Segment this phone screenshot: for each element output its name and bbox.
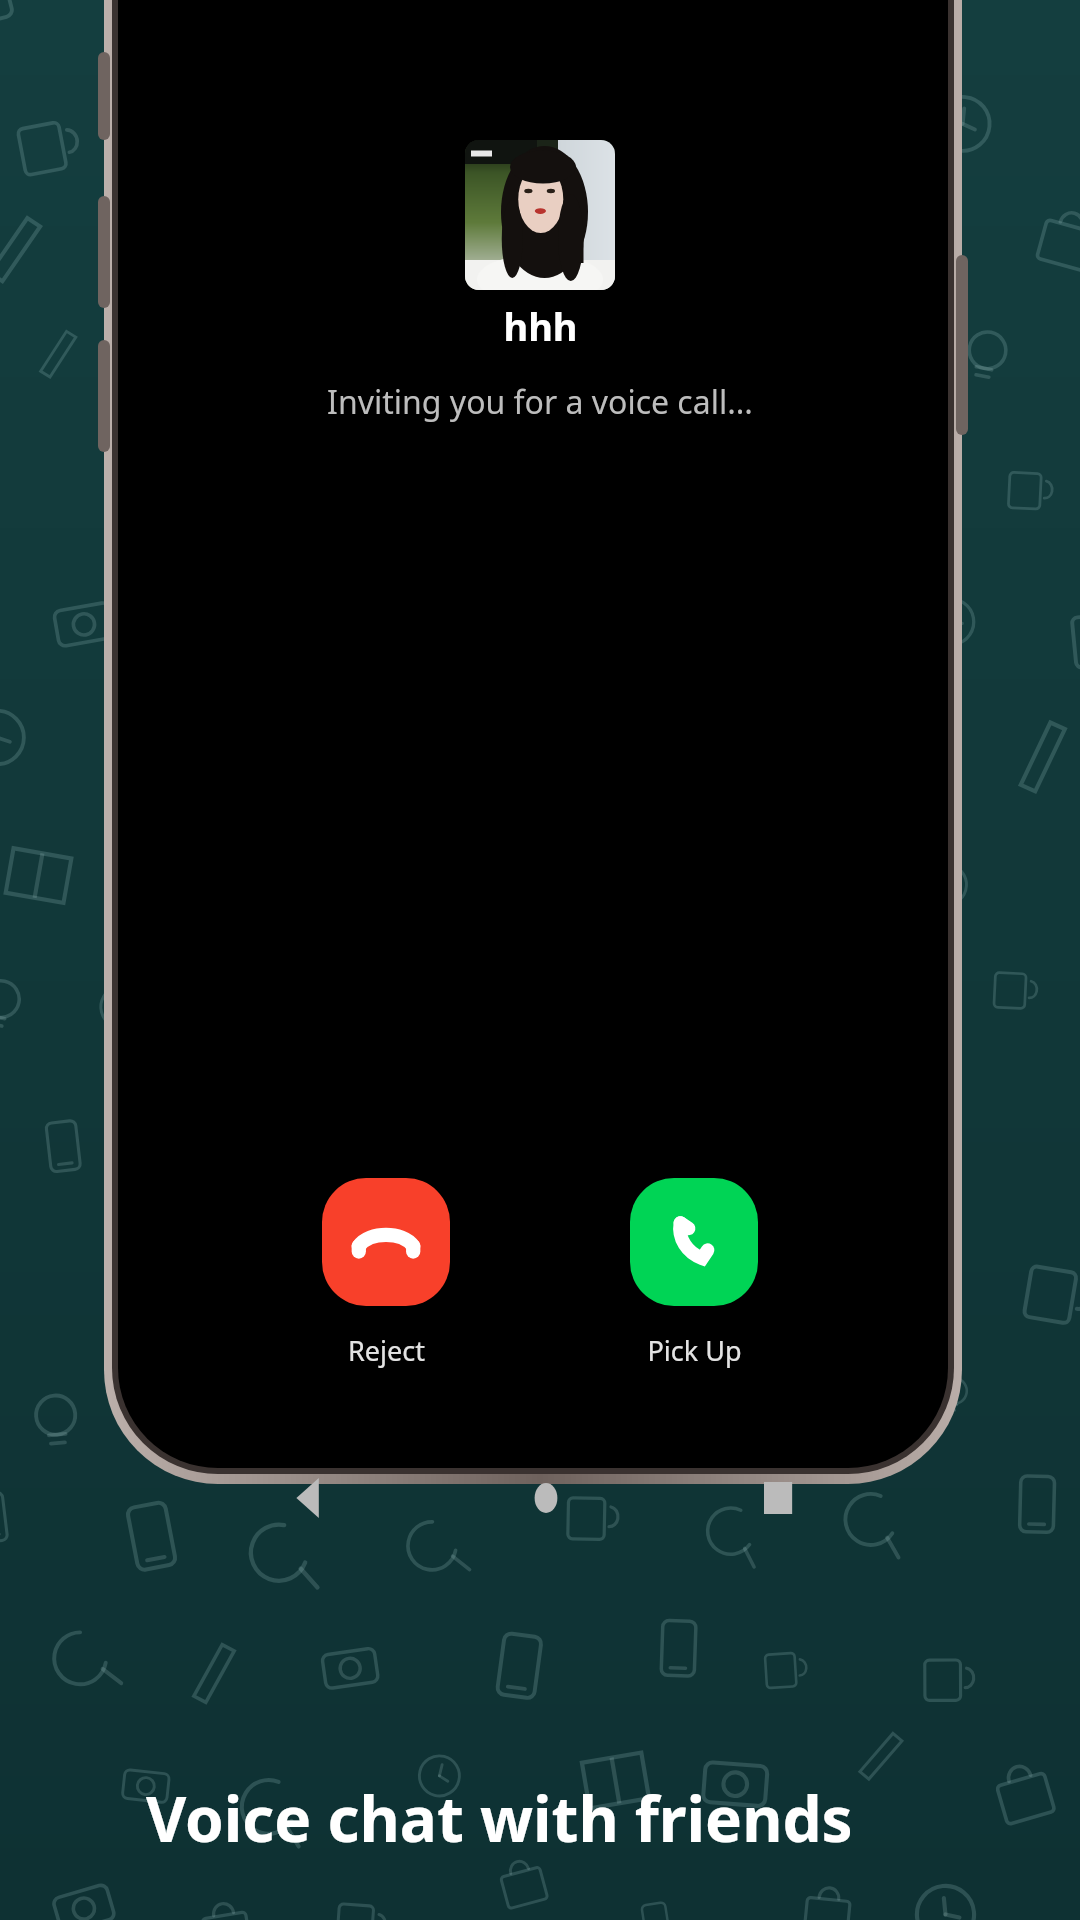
button[interactable]: Pick up call [630, 1178, 758, 1369]
button[interactable]: Recent apps [742, 1460, 818, 1536]
button[interactable]: Reject call [322, 1178, 450, 1369]
staticText: Pick Up [647, 1332, 742, 1369]
staticText: Inviting you for a voice call... [327, 380, 753, 424]
staticText: Reject [348, 1332, 425, 1369]
button[interactable]: Home [508, 1460, 584, 1536]
staticText: hhh [503, 300, 578, 352]
button[interactable]: Back [272, 1460, 348, 1536]
staticText: Voice chat with friends [146, 1776, 853, 1860]
